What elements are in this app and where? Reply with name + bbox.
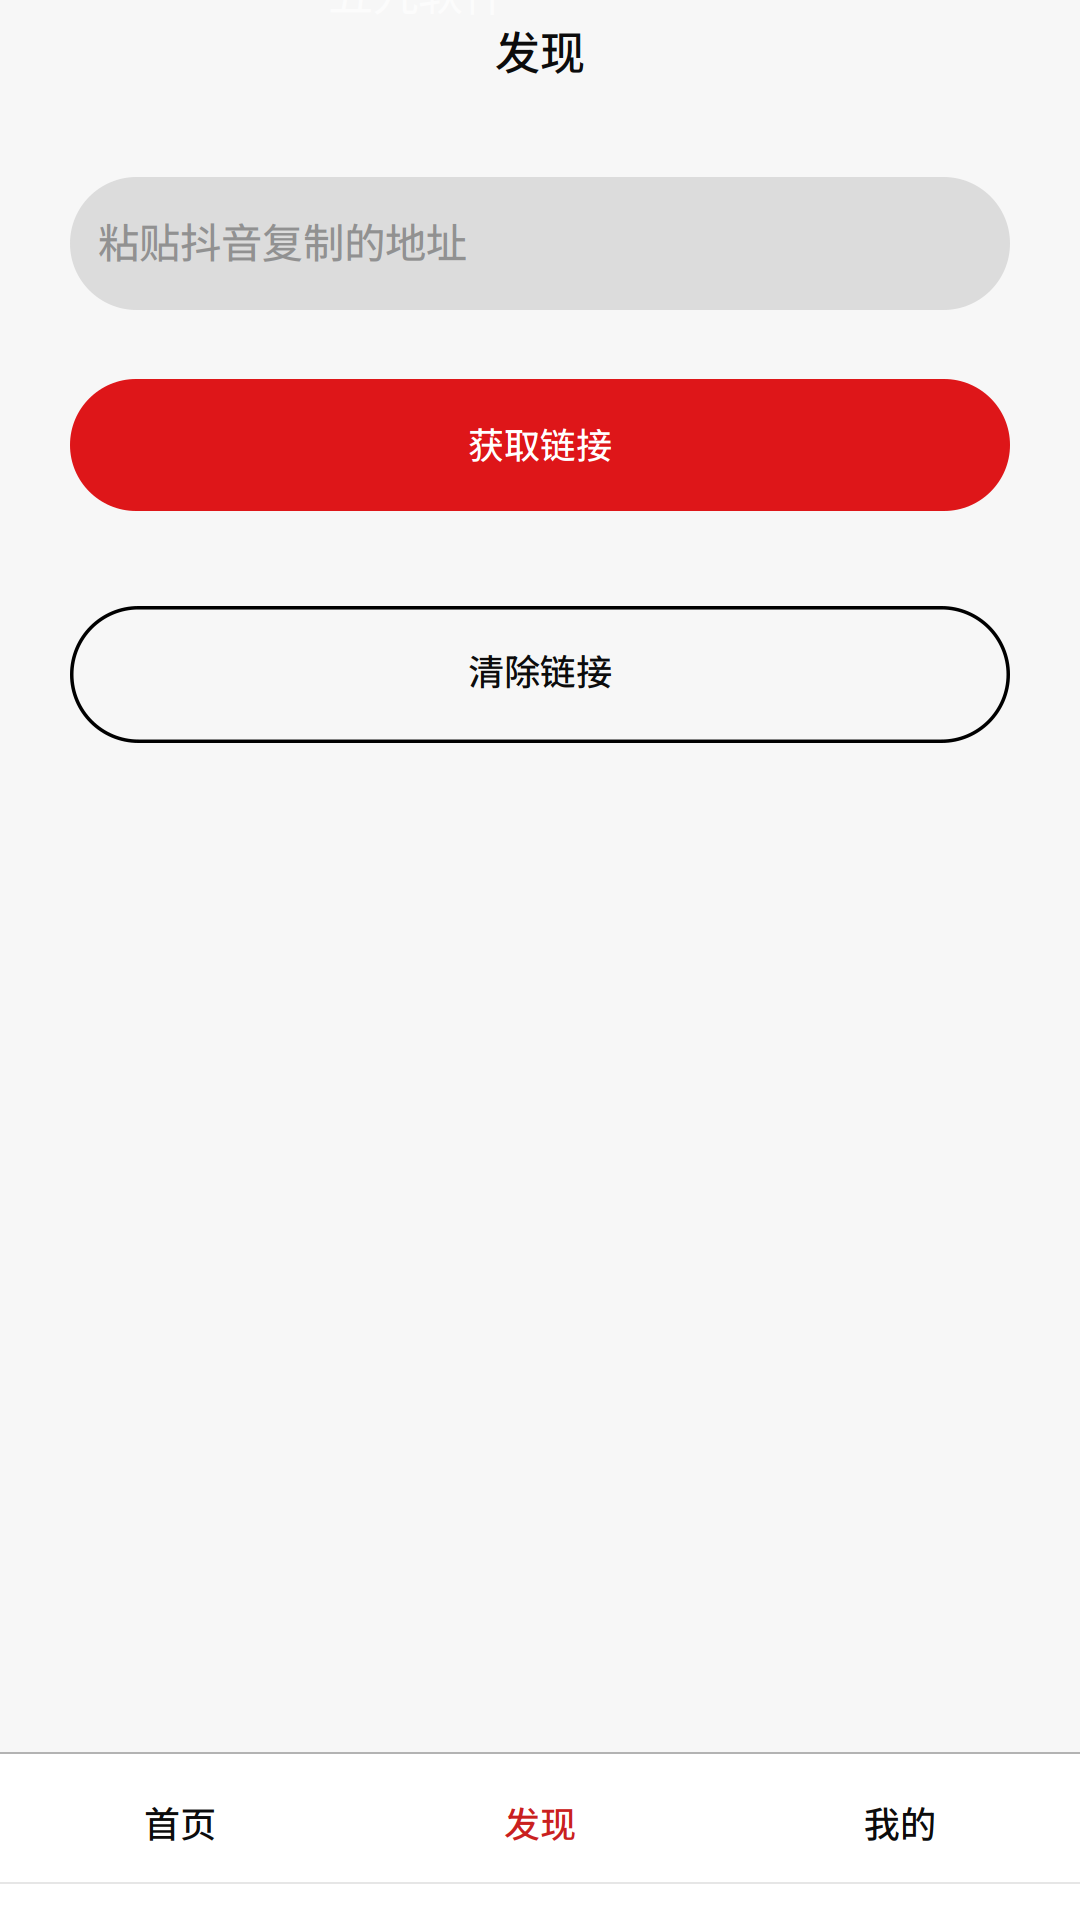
staticText: 发现 [504,1796,576,1848]
button[interactable]: 发现 [360,1754,720,1882]
staticText: 清除链接 [468,643,612,695]
staticText: 粘贴抖音复制的地址 [98,211,467,270]
button[interactable]: 首页 [0,1754,360,1882]
staticText: 我的 [864,1796,936,1848]
staticText: 首页 [144,1796,216,1848]
button[interactable]: 获取链接 [70,379,1010,511]
button[interactable]: 粘贴抖音复制的地址 [70,177,1010,310]
staticText: 获取链接 [468,417,612,469]
button[interactable]: 我的 [720,1754,1080,1882]
button[interactable]: 清除链接 [70,606,1010,743]
staticText: 发现 [495,17,585,83]
